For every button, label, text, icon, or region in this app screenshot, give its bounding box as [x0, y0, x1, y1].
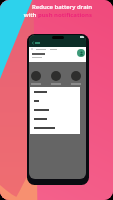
staticText: Reduce battery drain — [31, 3, 92, 11]
staticText: with push notifications — [23, 11, 92, 19]
